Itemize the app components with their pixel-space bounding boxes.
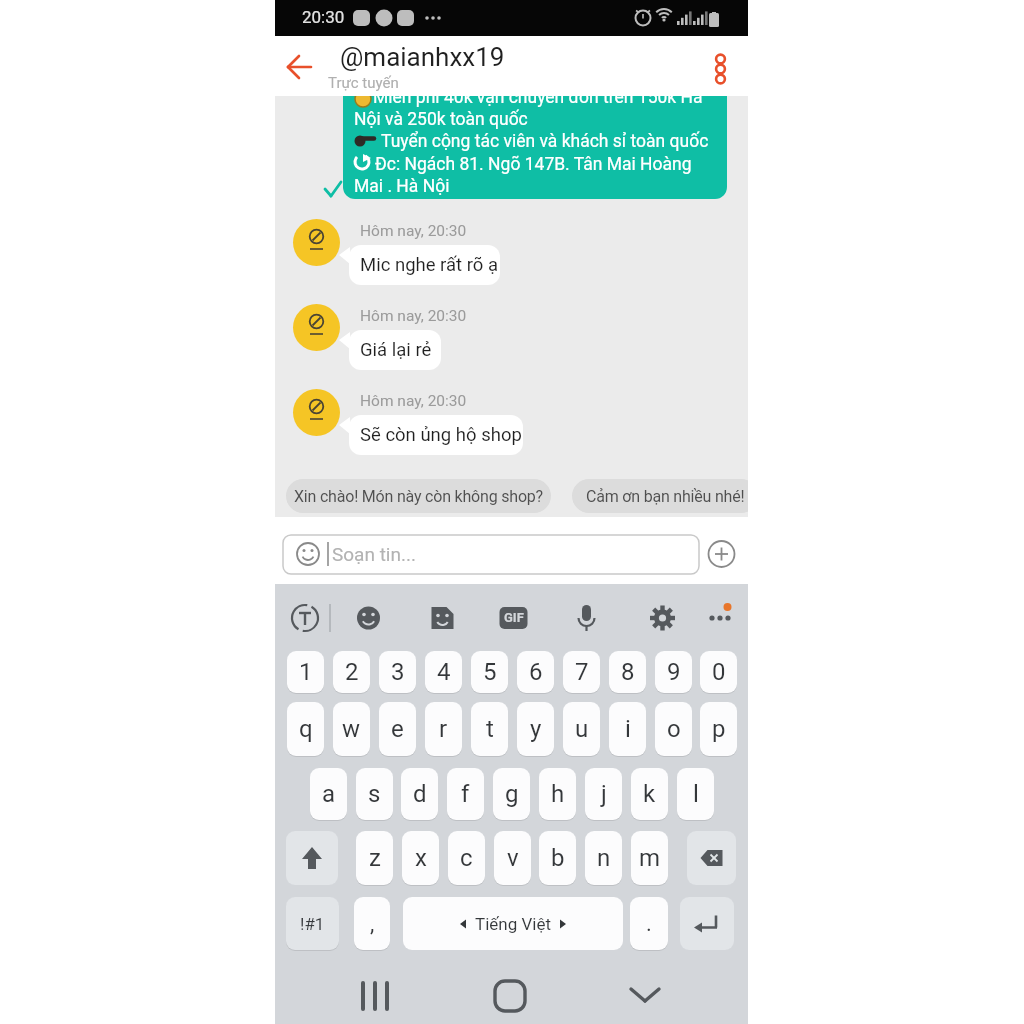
button[interactable]: b	[539, 831, 576, 885]
staticText: !#1	[300, 914, 325, 934]
button[interactable]: 0	[700, 651, 737, 693]
button[interactable]: p	[700, 702, 737, 756]
staticText: 2	[345, 658, 359, 686]
staticText: s	[368, 780, 381, 808]
staticText: q	[299, 715, 313, 743]
staticText: Hôm nay, 20:30	[360, 222, 467, 240]
button[interactable]: f	[447, 768, 484, 820]
staticText: d	[413, 780, 427, 808]
staticText: Đc: Ngách 81. Ngõ 147B. Tân Mai Hoàng	[375, 154, 692, 175]
button[interactable]: .	[630, 897, 668, 950]
button[interactable]: e	[379, 702, 416, 756]
button[interactable]: i	[609, 702, 646, 756]
button[interactable]: y	[517, 702, 554, 756]
button[interactable]: d	[401, 768, 438, 820]
button[interactable]: t	[471, 702, 508, 756]
button[interactable]: v	[494, 831, 531, 885]
button[interactable]: 7	[563, 651, 600, 693]
staticText: Miễn phí 40k vận chuyển đơn trên 150k Hà	[373, 96, 703, 108]
staticText: j	[601, 780, 607, 808]
button[interactable]: 2	[333, 651, 370, 693]
button[interactable]	[700, 46, 740, 91]
button[interactable]: g	[493, 768, 530, 820]
button[interactable]: Tiếng Việt	[403, 897, 623, 950]
staticText: a	[322, 780, 336, 808]
button[interactable]: q	[287, 702, 324, 756]
button[interactable]	[680, 897, 734, 950]
staticText: b	[551, 844, 565, 872]
button[interactable]: m	[631, 831, 668, 885]
staticText: m	[639, 844, 661, 872]
staticText: 6	[529, 658, 543, 686]
staticText: Mai . Hà Nội	[354, 176, 450, 197]
button[interactable]	[286, 831, 338, 885]
staticText: f	[461, 780, 470, 808]
staticText: Sẽ còn ủng hộ shop	[360, 424, 522, 446]
button[interactable]: Xin chào! Món này còn không shop?	[286, 479, 551, 513]
staticText: 8	[621, 658, 635, 686]
staticText: Nội và 250k toàn quốc	[354, 109, 528, 130]
staticText: l	[693, 780, 699, 808]
staticText: w	[342, 715, 361, 743]
button[interactable]: a	[310, 768, 347, 820]
staticText: p	[712, 715, 726, 743]
button[interactable]: l	[677, 768, 714, 820]
staticText: 1	[299, 658, 313, 686]
staticText: i	[625, 715, 631, 743]
staticText: Hôm nay, 20:30	[360, 392, 467, 410]
staticText: z	[369, 844, 381, 872]
button[interactable]: Giá lại rẻ	[349, 330, 441, 370]
button[interactable]: Cảm ơn bạn nhiều nhé!	[572, 479, 748, 513]
staticText: Tiếng Việt	[475, 914, 551, 934]
button[interactable]: 9	[655, 651, 692, 693]
button[interactable]: s	[356, 768, 393, 820]
button[interactable]	[280, 46, 320, 86]
button[interactable]	[283, 535, 699, 574]
button[interactable]: k	[631, 768, 668, 820]
staticText: Soạn tin...	[332, 543, 417, 565]
button[interactable]	[687, 831, 736, 885]
staticText: 5	[483, 658, 497, 686]
staticText: k	[643, 780, 656, 808]
button[interactable]: 1	[287, 651, 324, 693]
button[interactable]: 5	[471, 651, 508, 693]
staticText: c	[460, 844, 473, 872]
staticText: Xin chào! Món này còn không shop?	[294, 487, 543, 506]
button[interactable]: r	[425, 702, 462, 756]
button[interactable]: Mic nghe rất rõ ạ	[349, 245, 500, 285]
button[interactable]: o	[655, 702, 692, 756]
staticText: ,	[370, 911, 375, 937]
staticText: o	[667, 715, 681, 743]
staticText: Mic nghe rất rõ ạ	[360, 254, 499, 276]
button[interactable]: x	[402, 831, 439, 885]
staticText: n	[597, 844, 611, 872]
staticText: r	[439, 715, 448, 743]
button[interactable]: !#1	[286, 897, 339, 950]
staticText: Giá lại rẻ	[360, 339, 432, 361]
button[interactable]: z	[356, 831, 393, 885]
staticText: 7	[575, 658, 589, 686]
staticText: e	[391, 715, 404, 743]
staticText: y	[530, 715, 542, 743]
button[interactable]: u	[563, 702, 600, 756]
button[interactable]: Sẽ còn ủng hộ shop	[349, 415, 523, 455]
button[interactable]: w	[333, 702, 370, 756]
staticText: 20:30	[302, 7, 345, 27]
button[interactable]: c	[448, 831, 485, 885]
button[interactable]: ,	[354, 897, 390, 950]
staticText: Tuyển cộng tác viên và khách sỉ toàn quố…	[381, 131, 709, 152]
staticText: g	[505, 780, 519, 808]
button[interactable]: 4	[425, 651, 462, 693]
staticText: 4	[437, 658, 451, 686]
button[interactable]: 8	[609, 651, 646, 693]
staticText: GIF	[504, 610, 524, 625]
staticText: Cảm ơn bạn nhiều nhé!	[586, 487, 745, 506]
button[interactable]: h	[539, 768, 576, 820]
button[interactable]: n	[585, 831, 622, 885]
button[interactable]: 6	[517, 651, 554, 693]
staticText: x	[415, 844, 427, 872]
button[interactable]: j	[585, 768, 622, 820]
staticText: t	[486, 715, 494, 743]
button[interactable]: 3	[379, 651, 416, 693]
staticText: v	[507, 844, 519, 872]
